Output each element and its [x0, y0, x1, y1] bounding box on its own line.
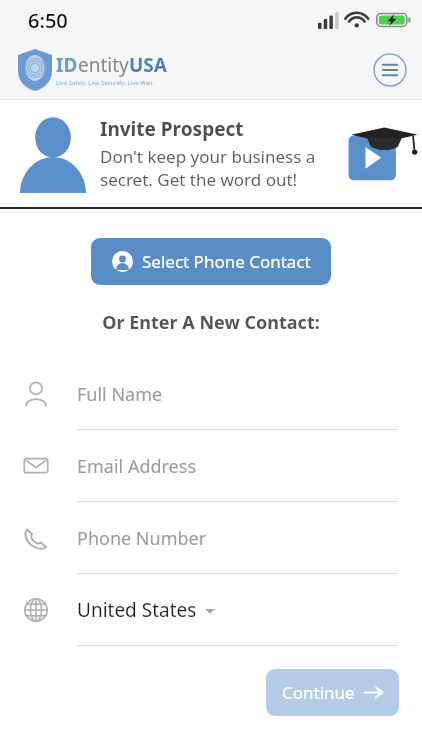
staticText: Live Safely. Live Securely. Live Well.	[56, 79, 154, 87]
button[interactable]: Continue	[266, 669, 399, 716]
button[interactable]: Watch training video	[346, 122, 410, 186]
staticText: entity	[78, 52, 129, 78]
staticText: ID	[56, 52, 78, 78]
button[interactable]: Invite Prospect	[0, 100, 422, 207]
button[interactable]: Select Phone Contact	[91, 238, 331, 285]
button[interactable]: Email Address	[0, 431, 422, 503]
staticText: Full Name	[77, 382, 163, 407]
staticText: Phone Number	[77, 526, 207, 551]
button[interactable]: Full Name	[0, 359, 422, 431]
button[interactable]: Menu	[373, 53, 407, 87]
staticText: United States	[77, 597, 197, 623]
staticText: Or Enter A New Contact:	[0, 310, 422, 335]
staticText: 6:50	[28, 7, 68, 34]
staticText: Don't keep your business a secret. Get t…	[100, 145, 316, 191]
button[interactable]: Phone Number	[0, 503, 422, 575]
staticText: Invite Prospect	[100, 116, 244, 142]
staticText: Email Address	[77, 454, 197, 479]
button[interactable]: United States	[0, 575, 422, 647]
staticText: Continue	[282, 681, 355, 704]
staticText: USA	[129, 52, 167, 78]
staticText: Select Phone Contact	[142, 250, 311, 273]
